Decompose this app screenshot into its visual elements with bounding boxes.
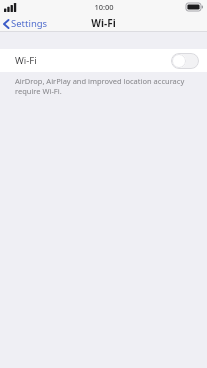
button[interactable]: Settings — [0, 15, 54, 32]
staticText: Wi-Fi — [15, 54, 37, 67]
staticText: 10:00 — [94, 2, 114, 12]
staticText: Wi-Fi — [91, 16, 116, 30]
staticText: Settings — [11, 17, 48, 30]
button[interactable]: Wi-Fi — [0, 49, 207, 72]
staticText: AirDrop, AirPlay and improved location a… — [15, 76, 189, 96]
button[interactable]: Wi-Fi toggle, off — [171, 53, 199, 69]
